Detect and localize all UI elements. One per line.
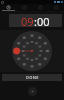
button[interactable]: Stopwatch	[48, 4, 64, 11]
button[interactable]: 09	[9, 14, 62, 27]
button[interactable]: World clock	[16, 4, 32, 11]
button[interactable]: Add alarm	[28, 87, 37, 96]
button[interactable]: Hour dial	[12, 31, 52, 71]
button[interactable]: DONE	[2, 74, 62, 81]
staticText: 09	[21, 14, 34, 27]
button[interactable]: Timer	[32, 4, 48, 11]
staticText: DONE	[26, 75, 39, 80]
staticText: :00	[34, 14, 50, 27]
button[interactable]: Alarm	[0, 4, 16, 11]
